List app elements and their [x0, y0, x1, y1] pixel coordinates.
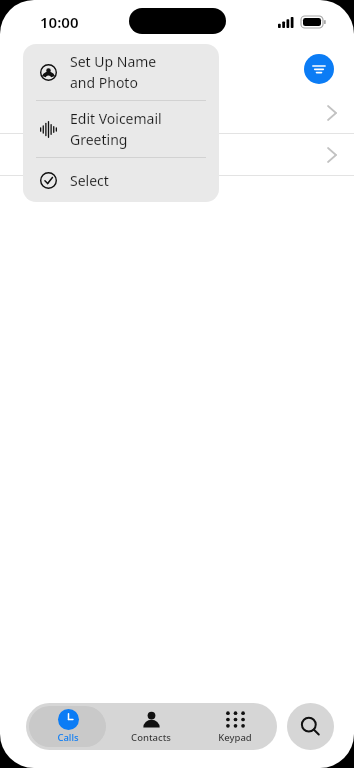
staticText: Select: [70, 171, 109, 190]
staticText: Keypad: [218, 731, 252, 744]
button[interactable]: Edit Voicemail: [23, 101, 219, 157]
button[interactable]: Filter calls: [304, 54, 334, 84]
staticText: 10:00: [40, 12, 79, 32]
button[interactable]: Calls: [29, 706, 106, 747]
staticText: Contacts: [131, 731, 171, 744]
staticText: Set Up Name: [70, 52, 157, 71]
button[interactable]: Select: [23, 158, 219, 202]
button[interactable]: Set Up Name: [23, 44, 219, 100]
staticText: and Photo: [70, 73, 138, 92]
button[interactable]: Search: [287, 703, 334, 750]
button[interactable]: [0, 134, 354, 175]
button[interactable]: [0, 92, 354, 133]
staticText: Edit Voicemail: [70, 109, 162, 128]
button[interactable]: Keypad: [196, 706, 274, 747]
button[interactable]: Contacts: [112, 706, 190, 747]
staticText: Greeting: [70, 130, 128, 149]
staticText: Calls: [57, 731, 79, 744]
